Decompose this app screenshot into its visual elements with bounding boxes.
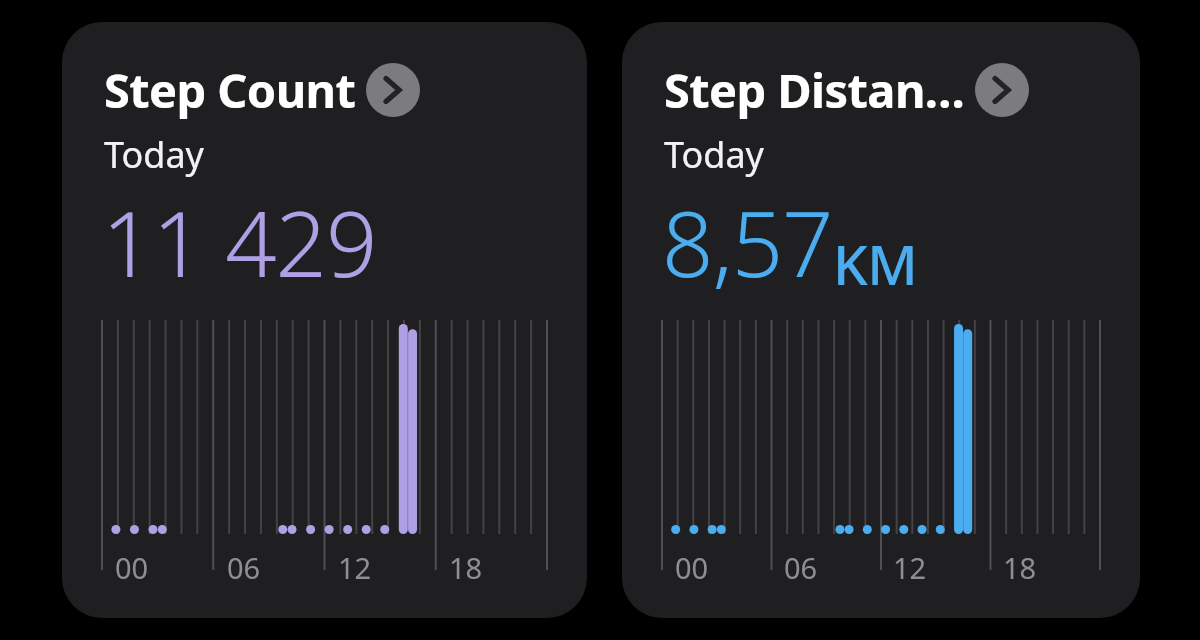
staticText: 12: [338, 548, 372, 582]
staticText: 11 429: [102, 181, 377, 304]
staticText: 18: [449, 548, 483, 582]
staticText: Step Distan…: [664, 58, 965, 122]
staticText: KM: [833, 226, 918, 301]
button[interactable]: Step Distan…: [622, 22, 1140, 618]
staticText: Today: [104, 130, 204, 179]
button[interactable]: Step Count: [62, 22, 587, 618]
staticText: 00: [675, 548, 709, 582]
staticText: 8,57: [662, 181, 833, 304]
staticText: 00: [115, 548, 149, 582]
staticText: 06: [784, 548, 818, 582]
staticText: Today: [664, 130, 764, 179]
staticText: 06: [227, 548, 261, 582]
button[interactable]: Open Step Distan… details: [975, 63, 1029, 117]
button[interactable]: Open Step Count details: [366, 63, 420, 117]
staticText: Step Count: [104, 58, 356, 122]
staticText: 18: [1003, 548, 1037, 582]
staticText: 12: [893, 548, 927, 582]
